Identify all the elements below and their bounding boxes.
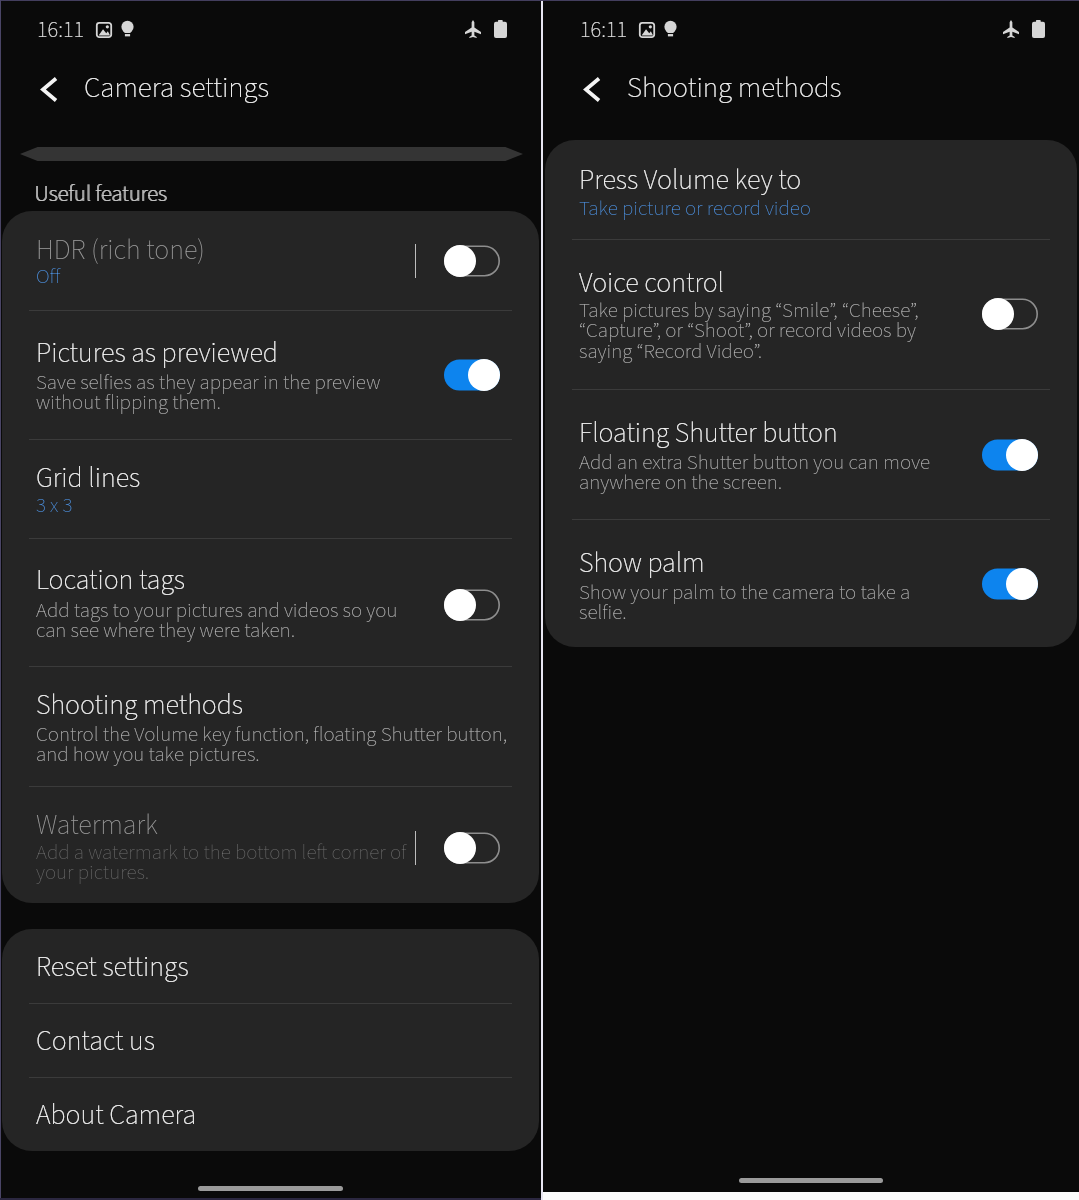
- button[interactable]: Switch on: [982, 568, 1038, 600]
- staticText: Take pictures by saying “Smile”, “Cheese…: [579, 295, 1077, 367]
- button[interactable]: About Camera: [2, 1078, 539, 1151]
- button[interactable]: Switch off: [444, 832, 500, 864]
- staticText: Show your palm to the camera to take a s…: [579, 577, 1077, 628]
- button[interactable]: Show palm: [545, 520, 1077, 647]
- button[interactable]: Press Volume key to: [545, 140, 1077, 239]
- button[interactable]: Switch off: [444, 589, 500, 621]
- staticText: 3 x 3: [36, 490, 536, 520]
- staticText: Control the Volume key function, floatin…: [36, 719, 536, 770]
- button[interactable]: Switch on: [444, 359, 500, 391]
- staticText: HDR (rich tone): [36, 230, 536, 270]
- staticText: Shooting methods: [36, 685, 536, 725]
- button[interactable]: Grid lines: [2, 440, 539, 538]
- button[interactable]: Location tags: [2, 539, 539, 666]
- staticText: Camera settings: [84, 67, 270, 108]
- staticText: Save selfies as they appear in the previ…: [36, 367, 536, 418]
- button[interactable]: Switch off: [444, 245, 500, 277]
- staticText: Floating Shutter button: [579, 413, 1077, 453]
- staticText: 16:11: [580, 14, 628, 46]
- button[interactable]: Reset settings: [2, 929, 539, 1003]
- button[interactable]: Switch on: [982, 439, 1038, 471]
- button[interactable]: Switch off: [982, 298, 1038, 330]
- button[interactable]: Shooting methods: [2, 667, 539, 786]
- staticText: Watermark: [36, 805, 536, 845]
- button[interactable]: Navigate up: [21, 58, 88, 120]
- staticText: Add a watermark to the bottom left corne…: [36, 837, 536, 888]
- staticText: Shooting methods: [627, 67, 842, 108]
- button[interactable]: Pictures as previewed: [2, 311, 539, 439]
- button[interactable]: Voice control: [545, 240, 1077, 389]
- button[interactable]: Floating Shutter button: [545, 390, 1077, 519]
- staticText: Useful features: [35, 178, 168, 203]
- staticText: 16:11: [37, 14, 85, 46]
- staticText: Location tags: [36, 560, 536, 600]
- staticText: Take picture or record video: [579, 193, 1077, 223]
- staticText: Off: [36, 261, 536, 291]
- button[interactable]: Contact us: [2, 1004, 539, 1077]
- staticText: Add an extra Shutter button you can move…: [579, 447, 1077, 498]
- staticText: Voice control: [579, 263, 1077, 303]
- button[interactable]: HDR (rich tone): [2, 211, 539, 310]
- staticText: About Camera: [36, 1095, 536, 1135]
- staticText: Grid lines: [36, 458, 536, 498]
- staticText: Contact us: [36, 1021, 536, 1061]
- staticText: Show palm: [579, 543, 1077, 583]
- staticText: Useful features: [34, 178, 167, 203]
- button[interactable]: Navigate up: [564, 58, 631, 120]
- staticText: Press Volume key to: [579, 160, 1077, 200]
- staticText: Pictures as previewed: [36, 333, 536, 373]
- staticText: Add tags to your pictures and videos so …: [36, 595, 536, 646]
- staticText: Reset settings: [36, 947, 536, 987]
- button[interactable]: Search: [20, 147, 523, 161]
- button[interactable]: Watermark: [2, 787, 539, 903]
